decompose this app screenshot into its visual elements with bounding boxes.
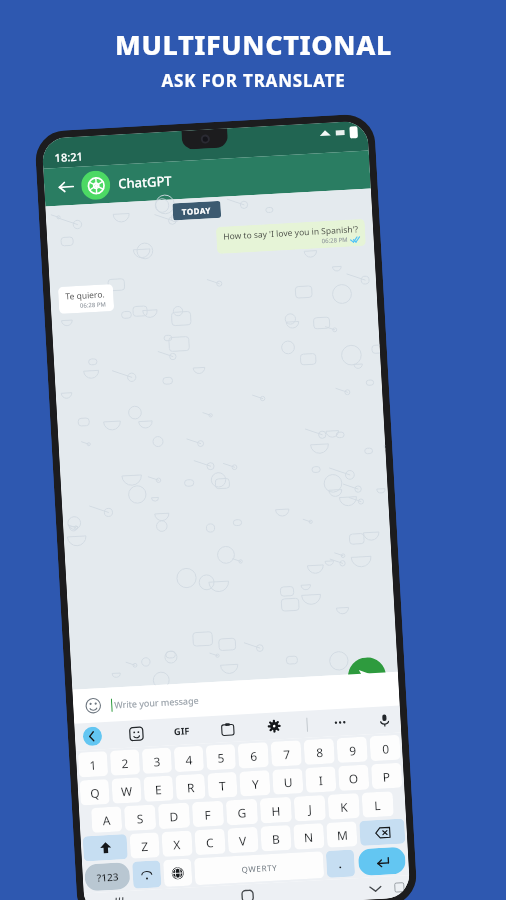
button[interactable]: O	[338, 764, 369, 791]
staticText: O	[348, 770, 359, 786]
button[interactable]: Send	[347, 656, 387, 696]
staticText: 2	[121, 755, 129, 771]
button[interactable]: F	[192, 801, 224, 827]
staticText: Te quiero.	[65, 288, 106, 303]
button[interactable]: S	[124, 804, 156, 831]
staticText: J	[308, 801, 313, 817]
button[interactable]: 5	[206, 744, 236, 770]
staticText: 06:28 PM	[80, 300, 106, 310]
button[interactable]: D	[158, 802, 190, 829]
staticText: A	[102, 812, 111, 828]
button[interactable]: I	[305, 766, 336, 793]
button[interactable]: 0	[369, 735, 401, 761]
staticText: 8	[316, 744, 324, 760]
staticText: ASK FOR TRANSLATE	[161, 69, 346, 92]
staticText: V	[239, 832, 247, 849]
staticText: 3	[153, 753, 161, 769]
button[interactable]: C	[194, 829, 226, 855]
staticText: C	[206, 834, 214, 851]
staticText: ?123	[96, 870, 119, 885]
staticText: T	[218, 777, 226, 794]
button[interactable]: L	[362, 791, 394, 818]
staticText: P	[382, 768, 391, 785]
button[interactable]: Back	[51, 173, 79, 200]
button[interactable]: Shift	[83, 834, 128, 861]
staticText: S	[136, 810, 144, 826]
staticText: How to say 'I love you in Spanish'?	[223, 223, 359, 243]
button[interactable]: Voice input	[375, 711, 393, 729]
staticText: N	[303, 829, 314, 845]
staticText: D	[169, 808, 179, 825]
button[interactable]: H	[260, 797, 292, 823]
staticText: 4	[185, 751, 193, 768]
staticText: X	[173, 836, 182, 852]
button[interactable]: Recents	[110, 893, 129, 900]
staticText: R	[186, 779, 195, 796]
staticText: U	[283, 774, 293, 790]
button[interactable]: 8	[303, 738, 335, 765]
staticText: 0	[382, 740, 390, 757]
button[interactable]: GIF	[173, 724, 190, 738]
button[interactable]: M	[326, 821, 357, 848]
button[interactable]: K	[328, 793, 360, 820]
button[interactable]: Keyboard layout	[394, 882, 404, 892]
button[interactable]: Clipboard	[218, 720, 236, 738]
button[interactable]: 6	[238, 742, 269, 769]
button[interactable]: E	[143, 775, 174, 802]
button[interactable]: Enter	[358, 846, 406, 876]
button[interactable]: 4	[174, 746, 204, 772]
button[interactable]: B	[260, 825, 292, 851]
button[interactable]: Q	[79, 779, 110, 806]
button[interactable]: Z	[129, 832, 160, 859]
staticText: GIF	[173, 724, 190, 738]
button[interactable]: Stickers	[127, 725, 145, 743]
staticText: B	[271, 830, 280, 847]
button[interactable]: R	[175, 774, 206, 800]
staticText: TODAY	[181, 204, 212, 217]
button[interactable]: N	[293, 823, 324, 850]
button[interactable]: ?123	[84, 862, 130, 891]
staticText: W	[121, 783, 133, 799]
button[interactable]: Home	[238, 886, 257, 900]
button[interactable]: P	[371, 763, 402, 789]
button[interactable]: Emoji	[82, 694, 105, 717]
button[interactable]: U	[272, 768, 303, 795]
button[interactable]: T	[207, 772, 238, 798]
staticText: M	[336, 827, 348, 843]
button[interactable]: Backspace	[359, 818, 405, 846]
button[interactable]: J	[294, 795, 326, 822]
button[interactable]: 7	[271, 740, 302, 767]
button[interactable]: Y	[239, 770, 270, 797]
button[interactable]: .	[326, 849, 355, 878]
staticText: 5	[217, 749, 225, 766]
staticText: Write your message	[114, 694, 199, 710]
button[interactable]: Emoji keyboard	[132, 860, 161, 889]
staticText: 18:21	[54, 148, 84, 165]
staticText: 7	[283, 746, 291, 762]
button[interactable]: Hide keyboard	[365, 879, 384, 898]
button[interactable]: V	[227, 827, 259, 853]
button[interactable]: 3	[142, 747, 172, 774]
button[interactable]: 1	[78, 751, 108, 778]
button[interactable]: More	[331, 713, 349, 731]
button[interactable]: A	[91, 806, 122, 833]
staticText: Q	[90, 784, 101, 801]
button[interactable]: W	[111, 777, 142, 804]
button[interactable]: Settings	[265, 717, 283, 735]
button[interactable]: Change language	[163, 858, 192, 887]
button[interactable]: QWERTY	[194, 851, 324, 885]
staticText: 9	[349, 742, 357, 758]
button[interactable]: 9	[336, 736, 368, 763]
staticText: E	[155, 781, 162, 797]
button[interactable]: 2	[110, 749, 140, 776]
staticText: F	[204, 806, 212, 823]
staticText: 1	[89, 757, 97, 773]
staticText: 06:28 PM	[321, 236, 348, 245]
button[interactable]: G	[226, 799, 258, 825]
button[interactable]: X	[161, 830, 193, 857]
staticText: L	[374, 797, 382, 813]
staticText: QWERTY	[241, 862, 278, 875]
button[interactable]: Expand toolbar	[82, 726, 102, 746]
staticText: Y	[251, 776, 259, 792]
staticText: MULTIFUNCTIONAL	[115, 26, 392, 63]
